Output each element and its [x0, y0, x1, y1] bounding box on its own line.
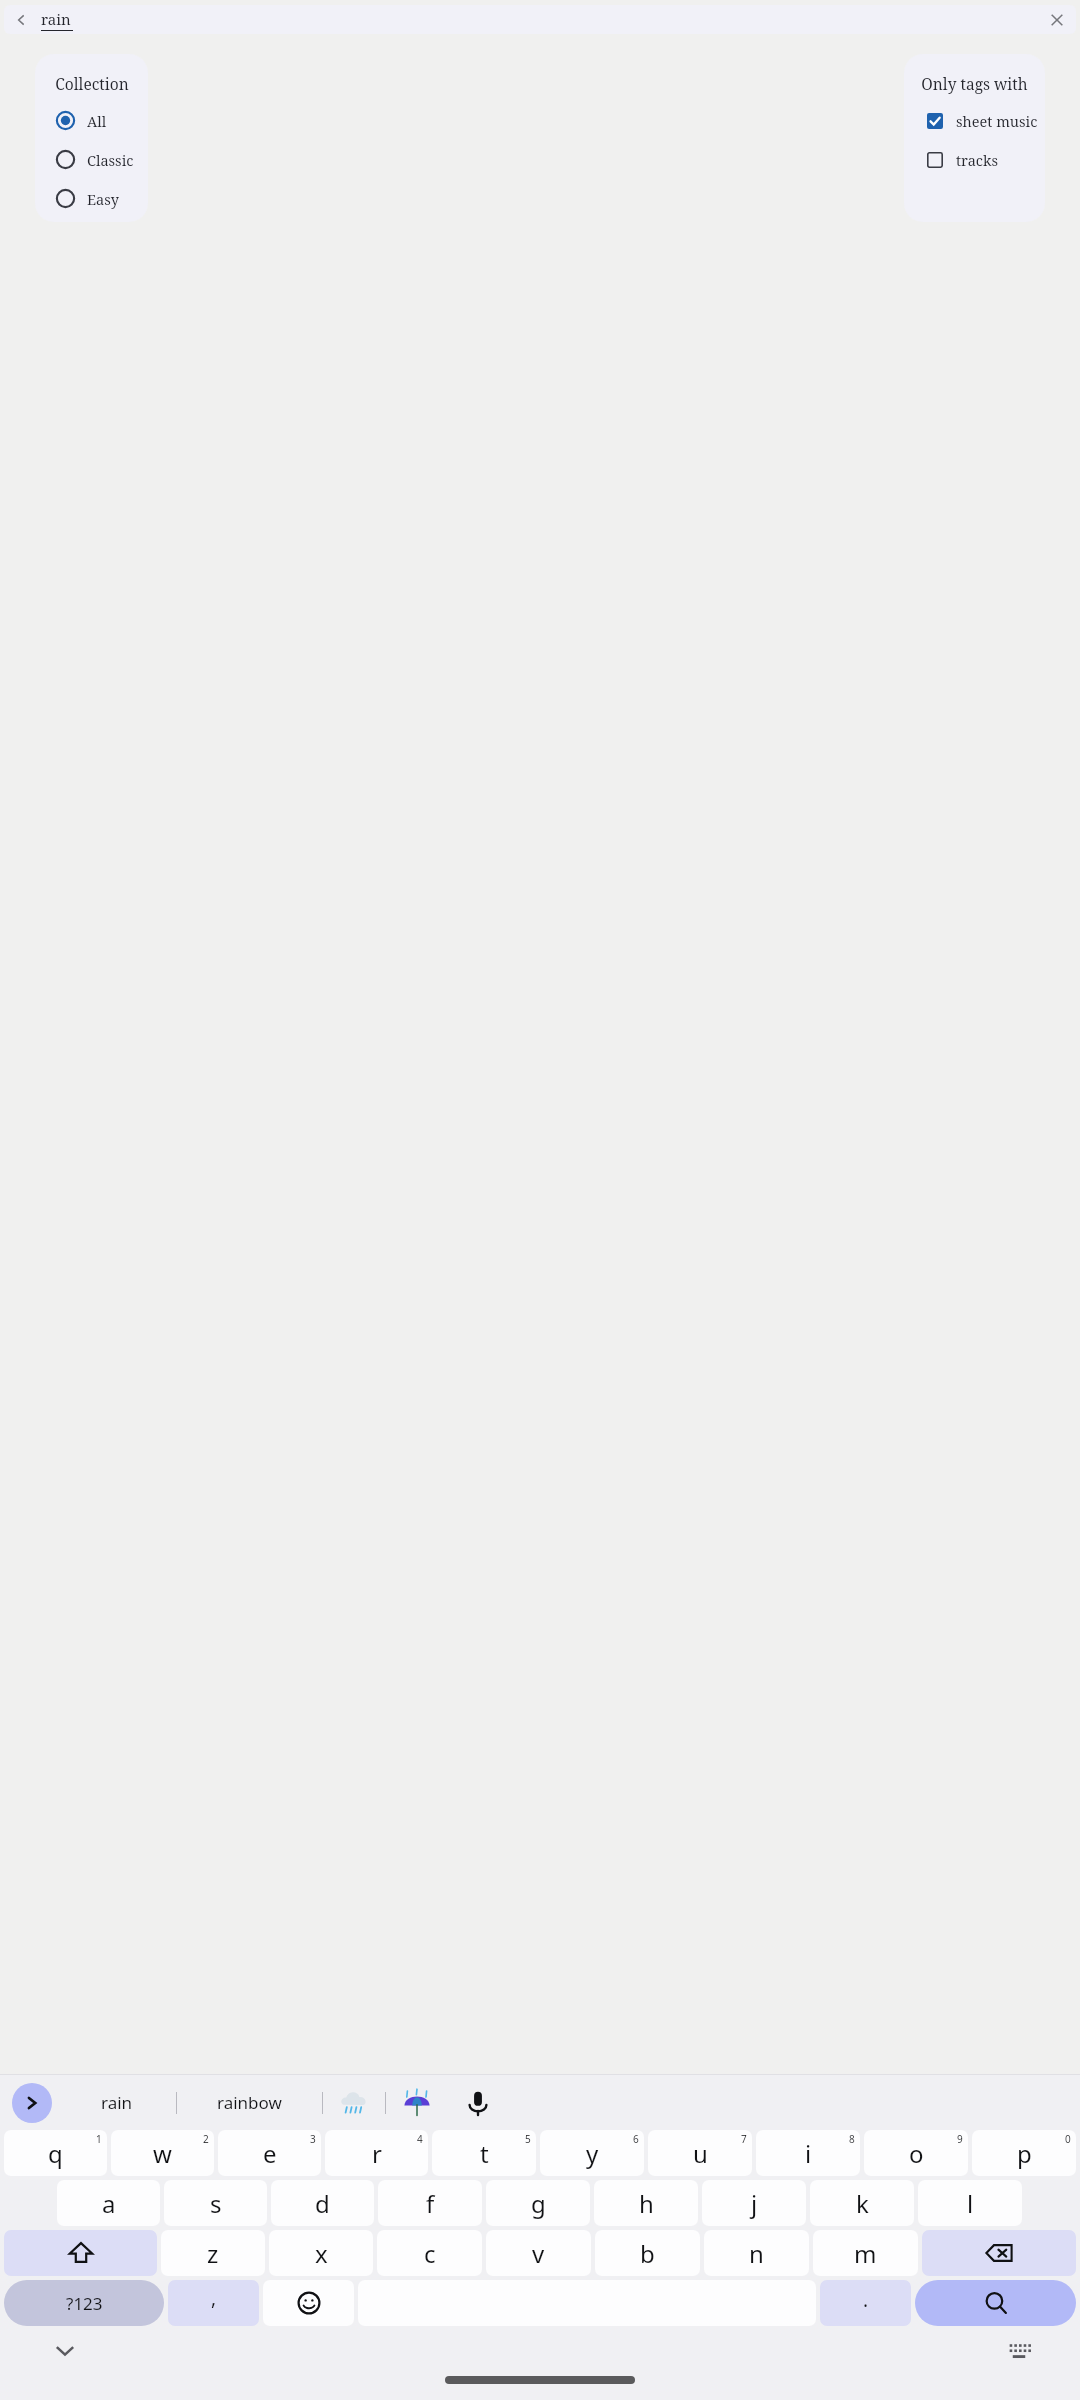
button[interactable]: h: [594, 2180, 698, 2226]
button[interactable]: Easy: [53, 185, 119, 212]
staticText: 8: [849, 2132, 855, 2146]
staticText: b: [640, 2237, 655, 2270]
staticText: f: [426, 2187, 435, 2220]
button[interactable]: sheet music: [922, 107, 1038, 134]
button[interactable]: j: [702, 2180, 806, 2226]
staticText: 2: [203, 2132, 209, 2146]
button[interactable]: All: [53, 107, 107, 134]
button[interactable]: Rain cloud emoji: [323, 2075, 385, 2130]
staticText: s: [210, 2187, 222, 2220]
button[interactable]: Clear search: [1047, 10, 1067, 30]
button[interactable]: ?123: [4, 2280, 164, 2326]
staticText: h: [639, 2187, 654, 2220]
staticText: l: [967, 2187, 974, 2220]
staticText: 6: [633, 2132, 639, 2146]
button[interactable]: u: [648, 2130, 752, 2176]
staticText: q: [48, 2137, 63, 2170]
button[interactable]: m: [813, 2230, 918, 2276]
staticText: u: [693, 2137, 708, 2170]
staticText: j: [751, 2187, 758, 2220]
staticText: 9: [957, 2132, 963, 2146]
staticText: r: [372, 2137, 382, 2170]
staticText: d: [315, 2187, 330, 2220]
staticText: p: [1017, 2137, 1032, 2170]
button[interactable]: k: [810, 2180, 914, 2226]
staticText: v: [532, 2237, 545, 2270]
button[interactable]: o: [864, 2130, 968, 2176]
button[interactable]: Hide keyboard: [52, 2338, 78, 2364]
button[interactable]: Emoji: [263, 2280, 354, 2326]
staticText: 1: [96, 2132, 102, 2146]
staticText: w: [153, 2137, 172, 2170]
button[interactable]: rain: [58, 2075, 176, 2130]
button[interactable]: s: [164, 2180, 267, 2226]
button[interactable]: y: [540, 2130, 644, 2176]
button[interactable]: a: [57, 2180, 160, 2226]
button[interactable]: w: [111, 2130, 214, 2176]
staticText: .: [863, 2287, 869, 2313]
staticText: k: [856, 2187, 869, 2220]
button[interactable]: ,: [168, 2280, 259, 2326]
button[interactable]: d: [271, 2180, 374, 2226]
button[interactable]: Search: [915, 2280, 1076, 2326]
staticText: rainbow: [217, 2091, 282, 2114]
button[interactable]: Classic: [53, 146, 134, 173]
button[interactable]: Back: [12, 11, 30, 29]
staticText: sheet music: [956, 111, 1038, 131]
button[interactable]: t: [432, 2130, 536, 2176]
button[interactable]: c: [377, 2230, 482, 2276]
staticText: Easy: [87, 189, 119, 209]
staticText: e: [263, 2137, 277, 2170]
button[interactable]: r: [325, 2130, 428, 2176]
button[interactable]: tracks: [922, 146, 998, 173]
button[interactable]: Shift: [4, 2230, 157, 2276]
staticText: tracks: [956, 150, 998, 170]
staticText: c: [424, 2237, 436, 2270]
button[interactable]: Backspace: [922, 2230, 1076, 2276]
button[interactable]: b: [595, 2230, 700, 2276]
staticText: x: [315, 2237, 328, 2270]
staticText: y: [586, 2137, 599, 2170]
staticText: 0: [1065, 2132, 1071, 2146]
staticText: g: [531, 2187, 546, 2220]
button[interactable]: Change keyboard: [1006, 2338, 1032, 2364]
button[interactable]: e: [218, 2130, 321, 2176]
button[interactable]: v: [486, 2230, 591, 2276]
staticText: 4: [417, 2132, 423, 2146]
staticText: o: [909, 2137, 924, 2170]
button[interactable]: Voice input: [448, 2075, 508, 2130]
staticText: i: [805, 2137, 812, 2170]
button[interactable]: q: [4, 2130, 107, 2176]
button[interactable]: rainbow: [177, 2075, 322, 2130]
button[interactable]: g: [486, 2180, 590, 2226]
button[interactable]: p: [972, 2130, 1076, 2176]
staticText: rain: [101, 2091, 133, 2114]
staticText: n: [749, 2237, 764, 2270]
button[interactable]: .: [820, 2280, 911, 2326]
staticText: t: [480, 2137, 489, 2170]
staticText: ,: [211, 2285, 217, 2311]
staticText: ?123: [66, 2292, 103, 2315]
staticText: 3: [310, 2132, 316, 2146]
staticText: 7: [741, 2132, 747, 2146]
button[interactable]: z: [161, 2230, 265, 2276]
staticText: rain: [41, 9, 71, 29]
button[interactable]: Umbrella emoji: [386, 2075, 448, 2130]
staticText: All: [87, 111, 107, 131]
button[interactable]: l: [918, 2180, 1022, 2226]
staticText: z: [207, 2237, 219, 2270]
staticText: Collection: [55, 73, 129, 94]
staticText: Classic: [87, 150, 134, 170]
staticText: m: [854, 2237, 877, 2270]
button[interactable]: x: [269, 2230, 373, 2276]
staticText: a: [102, 2187, 116, 2220]
button[interactable]: f: [378, 2180, 482, 2226]
staticText: Only tags with: [921, 73, 1028, 94]
staticText: 5: [525, 2132, 531, 2146]
button[interactable]: n: [704, 2230, 809, 2276]
button[interactable]: i: [756, 2130, 860, 2176]
button[interactable]: More suggestions: [12, 2083, 52, 2123]
